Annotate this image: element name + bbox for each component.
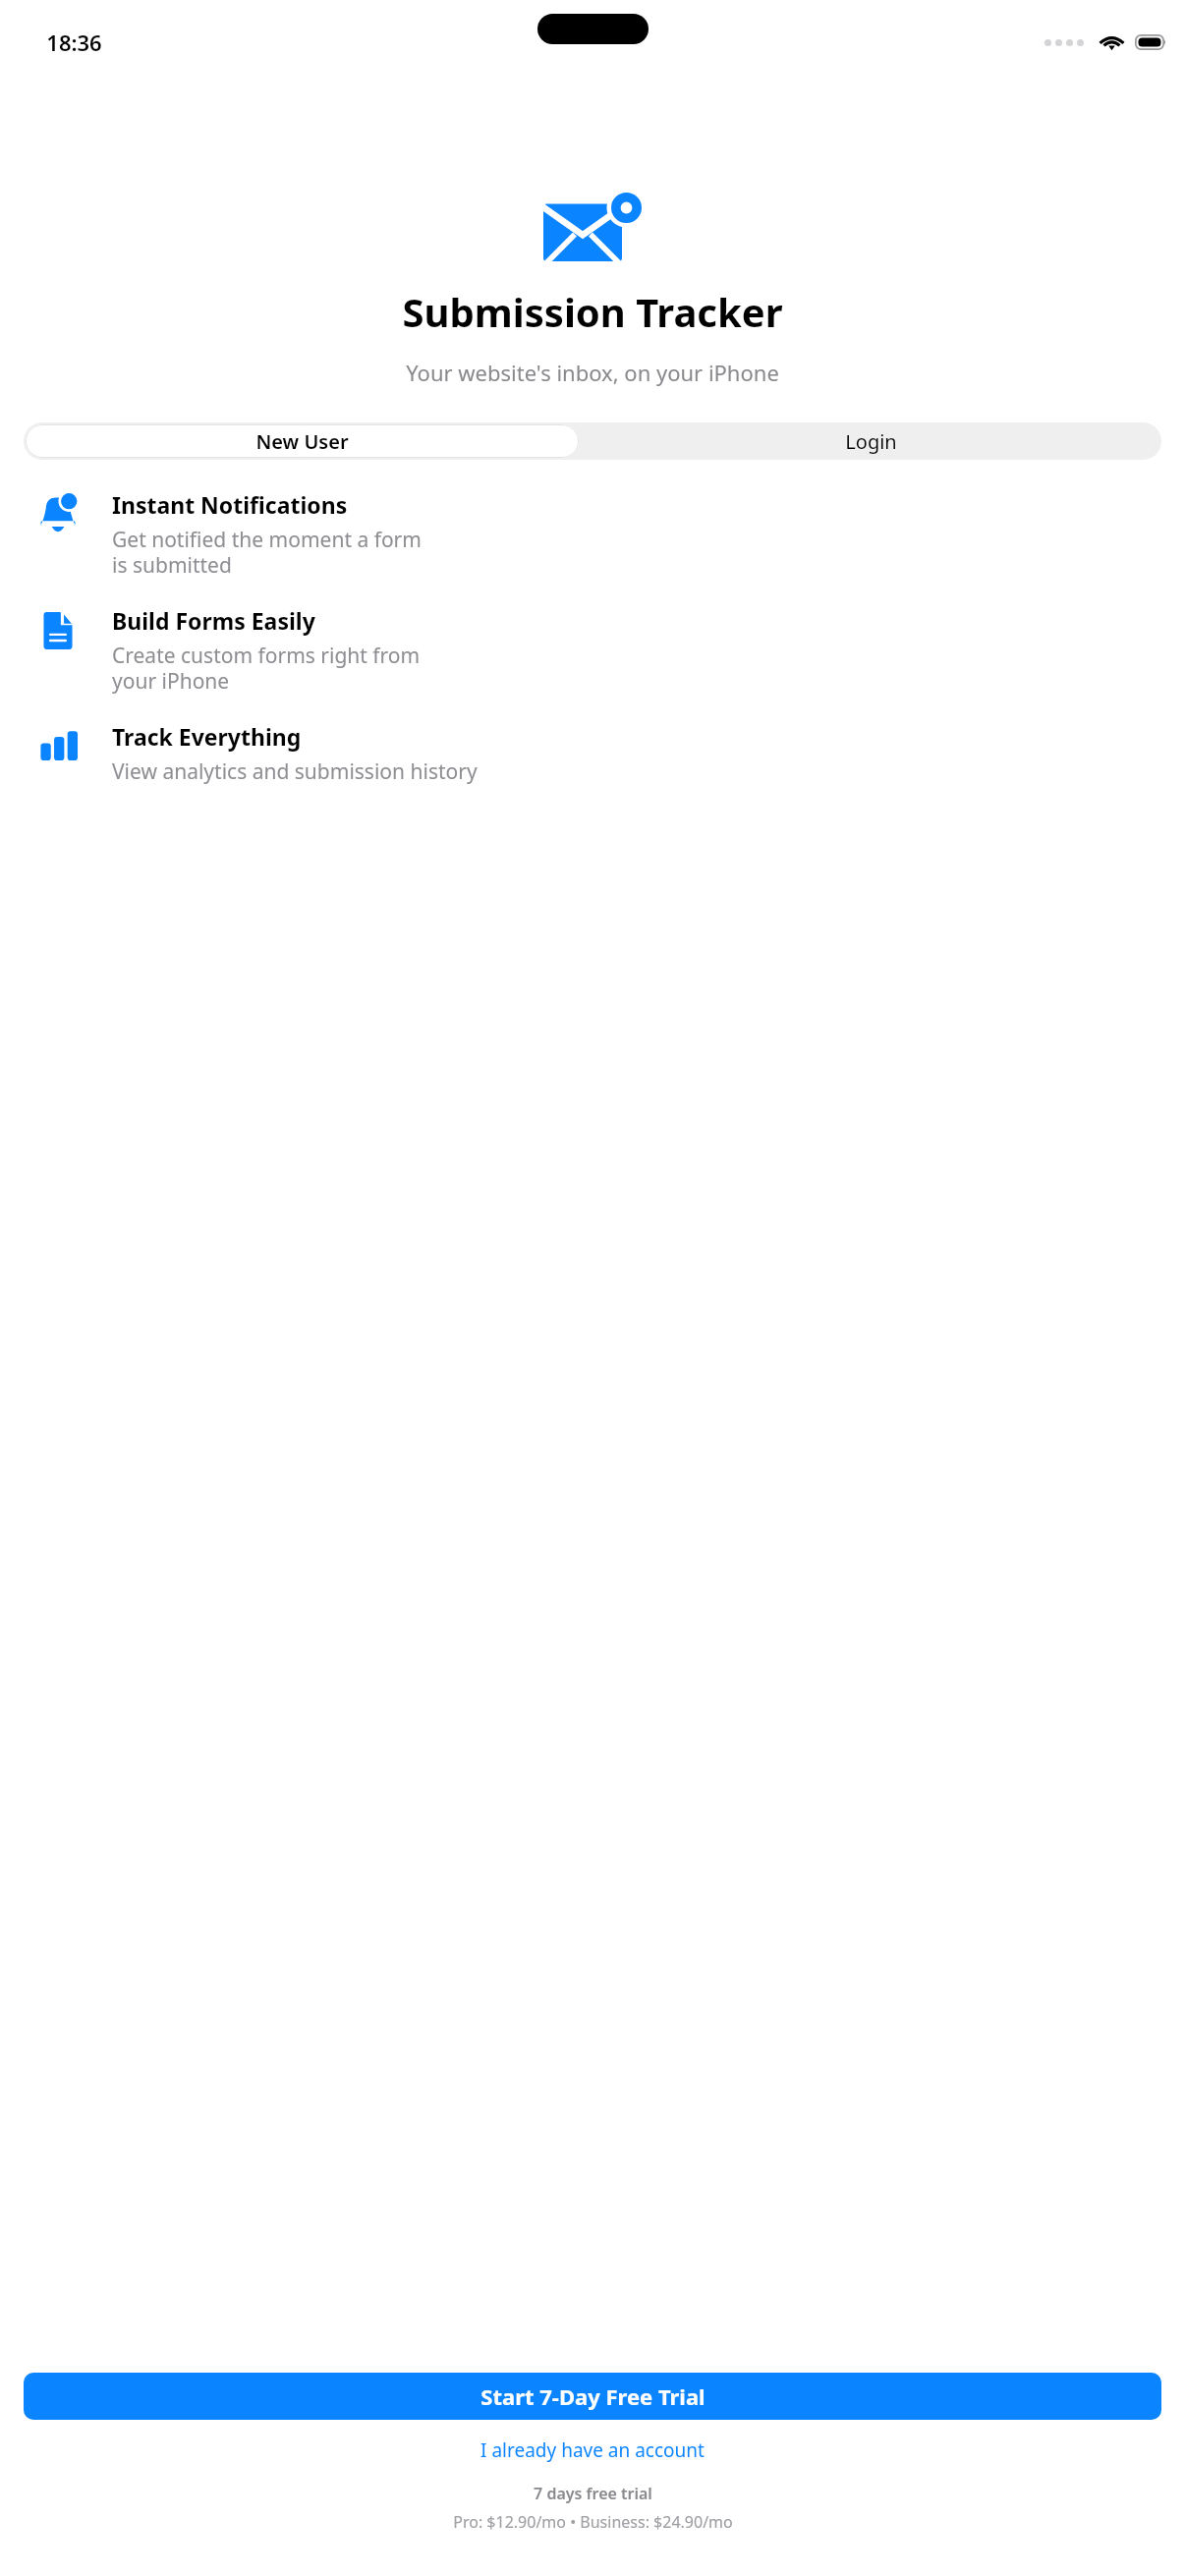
staticText: New User (255, 428, 349, 455)
button[interactable]: Login (581, 422, 1161, 460)
button[interactable]: Instant Notifications (0, 489, 1185, 580)
staticText: Start 7-Day Free Trial (480, 2381, 705, 2411)
staticText: Instant Notifications (112, 489, 348, 520)
staticText: Get notified the moment a form is submit… (112, 526, 422, 580)
staticText: 7 days free trial (534, 2483, 652, 2504)
staticText: Login (845, 428, 897, 455)
staticText: I already have an account (480, 2437, 705, 2463)
staticText: 18:36 (46, 28, 102, 57)
staticText: Your website's inbox, on your iPhone (406, 358, 779, 387)
staticText: Pro: $12.90/mo • Business: $24.90/mo (453, 2511, 733, 2533)
staticText: Build Forms Easily (112, 605, 315, 636)
staticText: Submission Tracker (402, 285, 783, 338)
button[interactable]: New User (26, 424, 579, 458)
button[interactable]: Build Forms Easily (0, 605, 1185, 696)
staticText: Create custom forms right from your iPho… (112, 642, 421, 696)
button[interactable]: Start 7-Day Free Trial (24, 2373, 1161, 2420)
staticText: Track Everything (112, 721, 302, 752)
button[interactable]: I already have an account (0, 2428, 1185, 2473)
staticText: View analytics and submission history (112, 757, 478, 786)
button[interactable]: Track Everything (0, 721, 1185, 786)
